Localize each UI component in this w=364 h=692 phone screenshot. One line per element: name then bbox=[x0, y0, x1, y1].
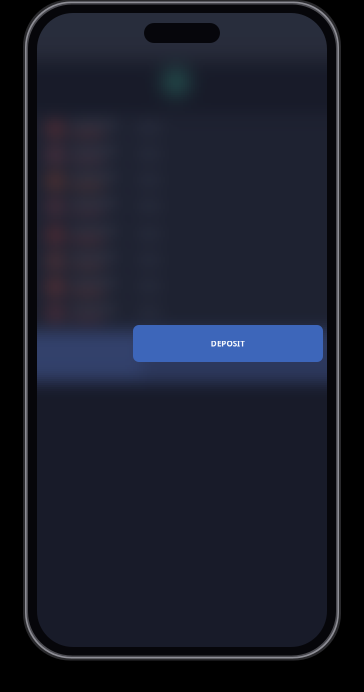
staticText: DEPOSIT bbox=[211, 338, 245, 349]
button[interactable]: DEPOSIT bbox=[133, 325, 323, 362]
